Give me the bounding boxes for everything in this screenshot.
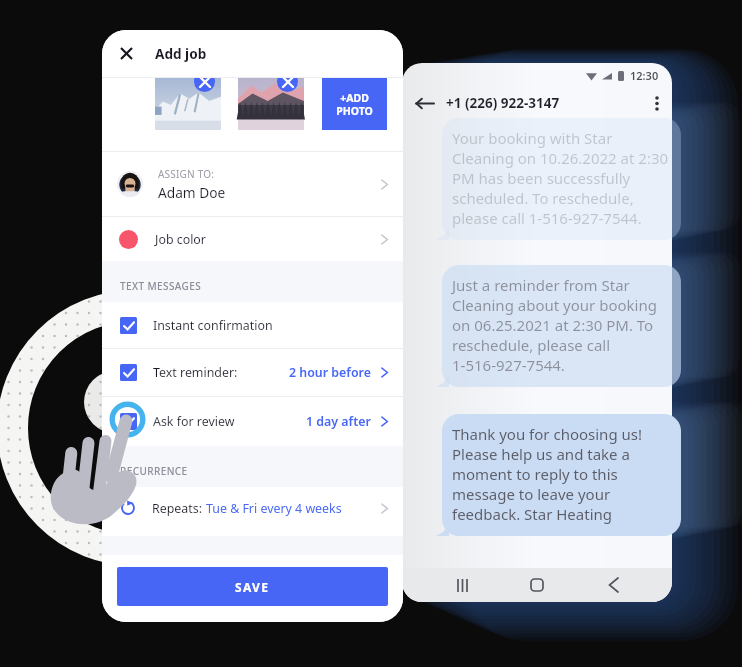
staticText: +ADD PHOTO	[336, 91, 373, 118]
button[interactable]: Instant confirmation	[102, 302, 403, 348]
staticText: +1 (226) 922-3147	[446, 94, 560, 112]
staticText: Thank you for choosing us! Please help u…	[452, 424, 642, 524]
staticText: Add job	[155, 44, 207, 63]
button[interactable]: Close	[102, 30, 150, 77]
button[interactable]: Job color	[102, 217, 403, 261]
staticText: SAVE	[235, 579, 270, 595]
button[interactable]: SAVE	[117, 567, 388, 606]
button[interactable]: Back	[597, 569, 629, 601]
staticText: Repeats:	[152, 500, 206, 517]
button[interactable]: Home	[521, 569, 553, 601]
staticText: 2 hour before	[289, 364, 371, 381]
staticText: Your booking with Star Cleaning on 10.26…	[452, 128, 669, 228]
staticText: 1 day after	[306, 413, 371, 430]
staticText: Tue & Fri every 4 weeks	[206, 500, 342, 517]
button[interactable]: Remove photo	[194, 78, 215, 92]
staticText: Job color	[155, 231, 206, 248]
staticText: Instant confirmation	[153, 317, 273, 334]
button[interactable]: Repeats:	[102, 487, 403, 529]
button[interactable]: +ADD PHOTO	[322, 78, 387, 130]
staticText: Ask for review	[153, 413, 235, 430]
staticText: Text reminder:	[153, 364, 238, 381]
button[interactable]: Recents	[446, 569, 478, 601]
button[interactable]: Remove photo	[277, 78, 298, 92]
staticText: ASSIGN TO:	[158, 167, 215, 181]
button[interactable]: ASSIGN TO:	[102, 152, 403, 216]
button[interactable]: Ask for review	[102, 397, 403, 446]
button[interactable]: Back	[402, 88, 446, 118]
staticText: TEXT MESSAGES	[120, 279, 202, 293]
staticText: Adam Doe	[158, 183, 226, 202]
staticText: 12:30	[630, 68, 659, 83]
button[interactable]: Text reminder:	[102, 349, 403, 396]
button[interactable]: More options	[642, 88, 672, 118]
staticText: Just a reminder from Star Cleaning about…	[452, 275, 657, 375]
staticText: RECURRENCE	[120, 464, 188, 478]
